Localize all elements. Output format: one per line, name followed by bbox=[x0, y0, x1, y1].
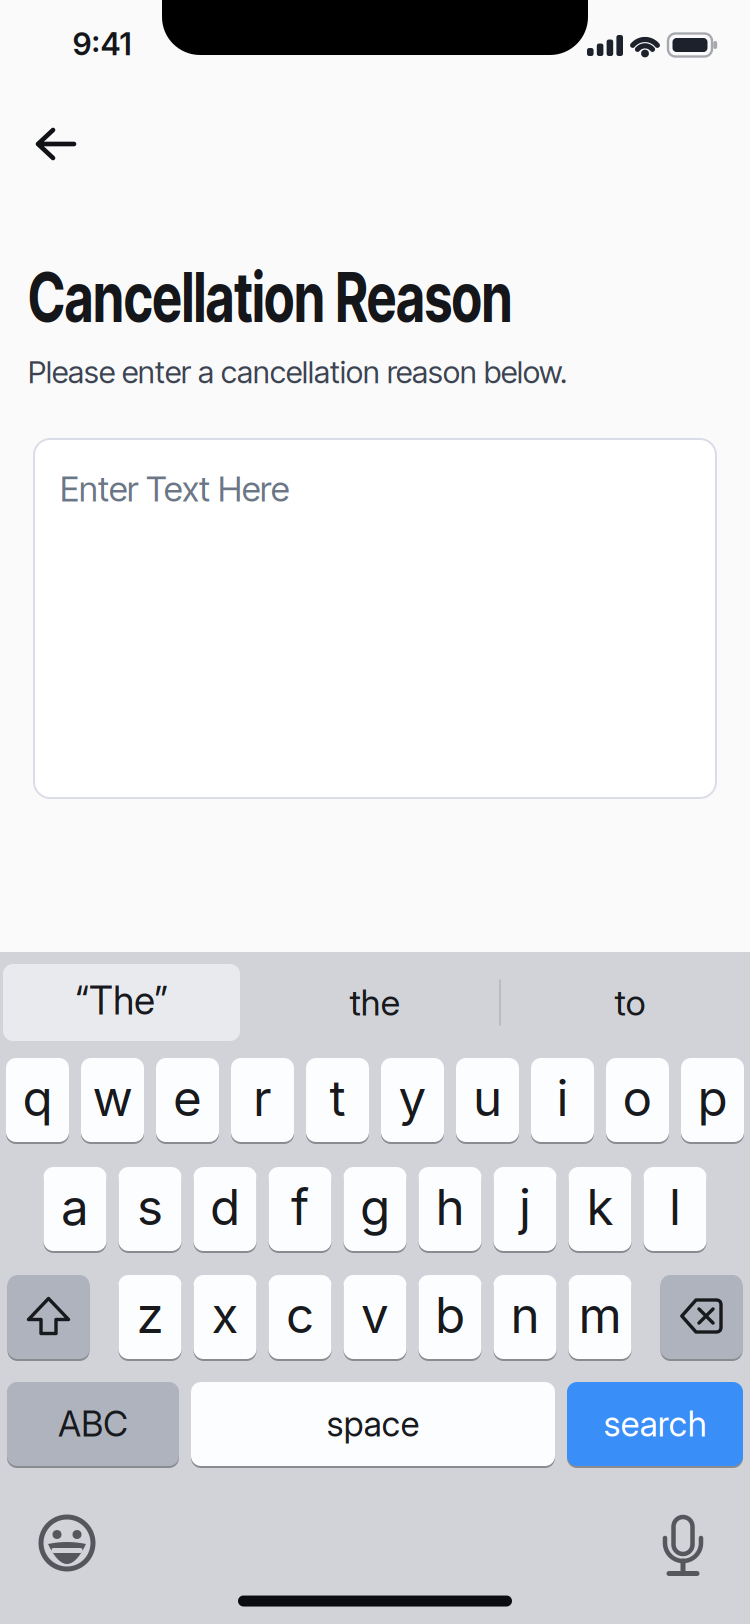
button[interactable]: l bbox=[643, 1166, 706, 1252]
button[interactable]: a bbox=[43, 1166, 106, 1252]
button[interactable]: to bbox=[515, 964, 745, 1041]
staticText: g bbox=[360, 1178, 390, 1236]
staticText: t bbox=[329, 1069, 345, 1127]
button[interactable]: u bbox=[456, 1057, 519, 1143]
button[interactable]: h bbox=[418, 1166, 481, 1252]
staticText: j bbox=[519, 1178, 531, 1236]
button[interactable]: search bbox=[567, 1381, 743, 1467]
button[interactable]: j bbox=[493, 1166, 556, 1252]
staticText: Cancellation Reason bbox=[28, 248, 674, 346]
button[interactable]: space bbox=[191, 1381, 555, 1467]
staticText: Please enter a cancellation reason below… bbox=[28, 350, 567, 394]
button[interactable]: ABC bbox=[7, 1381, 179, 1467]
staticText: o bbox=[622, 1069, 652, 1127]
button[interactable]: m bbox=[568, 1274, 631, 1360]
button[interactable]: Dictation bbox=[656, 1516, 710, 1584]
staticText: p bbox=[697, 1069, 727, 1127]
staticText: v bbox=[361, 1286, 389, 1344]
staticText: ABC bbox=[58, 1404, 128, 1444]
button[interactable]: b bbox=[418, 1274, 481, 1360]
staticText: f bbox=[291, 1178, 309, 1236]
staticText: the bbox=[349, 981, 400, 1024]
button[interactable]: the bbox=[260, 964, 490, 1041]
button[interactable]: p bbox=[681, 1057, 744, 1143]
button[interactable]: “The” bbox=[3, 964, 240, 1041]
staticText: to bbox=[614, 981, 645, 1024]
staticText: m bbox=[578, 1286, 621, 1344]
button[interactable]: Cancellation reason text entry bbox=[33, 438, 717, 799]
button[interactable]: f bbox=[268, 1166, 331, 1252]
button[interactable]: v bbox=[343, 1274, 406, 1360]
staticText: r bbox=[253, 1069, 272, 1127]
button[interactable]: n bbox=[493, 1274, 556, 1360]
staticText: n bbox=[510, 1286, 539, 1344]
staticText: x bbox=[211, 1286, 238, 1344]
staticText: “The” bbox=[75, 978, 168, 1023]
button[interactable]: x bbox=[193, 1274, 256, 1360]
button[interactable]: o bbox=[606, 1057, 669, 1143]
staticText: u bbox=[473, 1069, 502, 1127]
staticText: s bbox=[137, 1178, 163, 1236]
staticText: k bbox=[586, 1178, 613, 1236]
button[interactable]: e bbox=[156, 1057, 219, 1143]
staticText: i bbox=[556, 1069, 568, 1127]
staticText: space bbox=[326, 1404, 419, 1444]
staticText: e bbox=[173, 1069, 202, 1127]
button[interactable]: s bbox=[118, 1166, 181, 1252]
staticText: b bbox=[435, 1286, 465, 1344]
staticText: h bbox=[435, 1178, 464, 1236]
staticText: z bbox=[136, 1286, 163, 1344]
button[interactable]: c bbox=[268, 1274, 331, 1360]
button[interactable]: t bbox=[306, 1057, 369, 1143]
button[interactable]: w bbox=[81, 1057, 144, 1143]
staticText: q bbox=[22, 1069, 52, 1127]
button[interactable]: Emoji bbox=[40, 1516, 94, 1570]
staticText: c bbox=[286, 1286, 314, 1344]
staticText: Enter Text Here bbox=[60, 464, 289, 514]
button[interactable]: Back bbox=[24, 116, 88, 172]
staticText: w bbox=[92, 1069, 132, 1127]
button[interactable]: k bbox=[568, 1166, 631, 1252]
button[interactable]: q bbox=[6, 1057, 69, 1143]
staticText: d bbox=[210, 1178, 240, 1236]
button[interactable]: d bbox=[193, 1166, 256, 1252]
staticText: search bbox=[603, 1404, 706, 1444]
button[interactable]: z bbox=[118, 1274, 181, 1360]
button[interactable]: Delete bbox=[660, 1274, 742, 1360]
button[interactable]: y bbox=[381, 1057, 444, 1143]
staticText: y bbox=[398, 1069, 426, 1127]
button[interactable]: g bbox=[343, 1166, 406, 1252]
button[interactable]: Shift bbox=[7, 1274, 89, 1360]
button[interactable]: i bbox=[531, 1057, 594, 1143]
staticText: 9:41 bbox=[72, 26, 131, 62]
staticText: l bbox=[669, 1178, 681, 1236]
staticText: a bbox=[61, 1178, 89, 1236]
button[interactable]: r bbox=[231, 1057, 294, 1143]
